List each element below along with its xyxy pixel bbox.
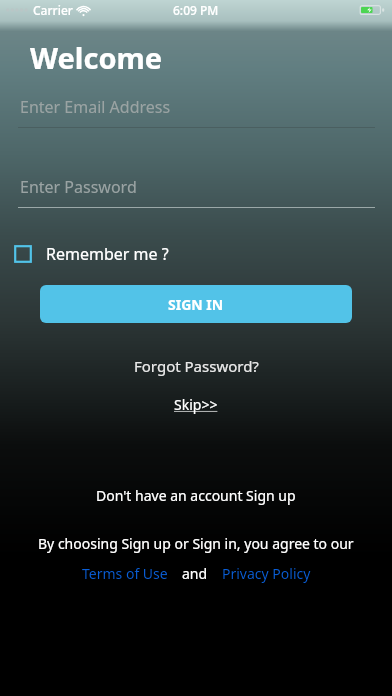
staticText: Privacy Policy [222, 564, 311, 583]
staticText: Enter Password [20, 176, 137, 198]
staticText: Remember me ? [46, 243, 169, 265]
staticText: Terms of Use [82, 564, 168, 583]
staticText: Welcome [30, 38, 163, 77]
button[interactable]: Remember me ? [14, 243, 169, 265]
staticText: Don't have an account Sign up [96, 486, 296, 505]
button[interactable]: Enter Email Address [0, 96, 392, 128]
button[interactable]: Enter Password [0, 176, 392, 208]
staticText: 6:09 PM [173, 2, 219, 18]
button[interactable]: Terms of Use [78, 562, 172, 585]
staticText: Forgot Password? [134, 356, 259, 376]
button[interactable]: Privacy Policy [218, 562, 315, 585]
button[interactable]: Don't have an account Sign up [88, 484, 304, 507]
button[interactable]: Skip>> [166, 393, 226, 416]
staticText: By choosing Sign up or Sign in, you agre… [38, 534, 354, 553]
staticText: Enter Email Address [20, 96, 171, 118]
staticText: SIGN IN [168, 295, 224, 314]
staticText: and [182, 564, 208, 583]
other: Battery charging [359, 4, 385, 16]
staticText: Carrier [33, 2, 73, 18]
button[interactable]: SIGN IN [40, 285, 352, 323]
button[interactable]: Forgot Password? [126, 354, 267, 378]
staticText: Skip>> [174, 395, 218, 414]
